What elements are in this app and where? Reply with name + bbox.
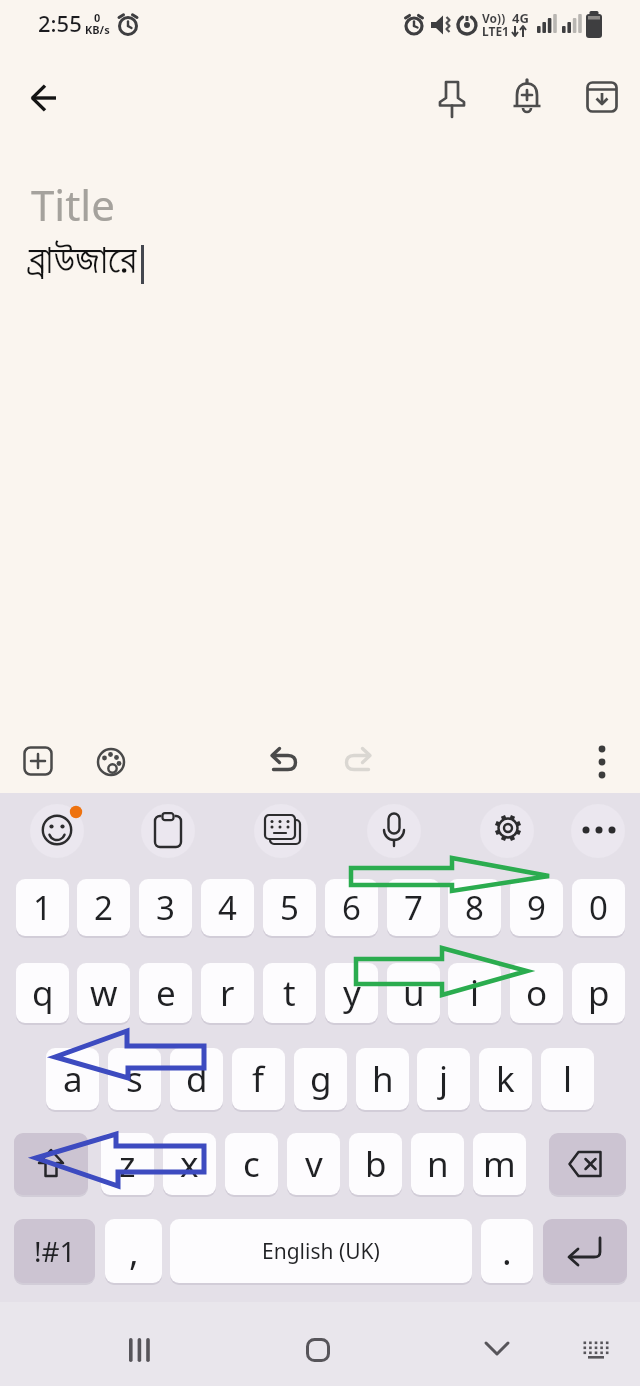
button[interactable]: u (387, 963, 440, 1023)
button[interactable]: 2 (77, 879, 130, 936)
staticText: n (427, 1140, 449, 1188)
staticText: . (502, 1227, 512, 1276)
button[interactable]: i (448, 963, 501, 1023)
staticText: y (343, 969, 361, 1017)
button[interactable] (543, 1219, 627, 1283)
staticText: a (63, 1055, 83, 1103)
button[interactable] (26, 82, 60, 114)
button[interactable] (153, 812, 183, 849)
button[interactable]: s (108, 1048, 161, 1110)
button[interactable]: j (417, 1048, 470, 1110)
staticText: u (403, 969, 425, 1017)
button[interactable]: h (356, 1048, 409, 1110)
staticText: f (252, 1055, 265, 1103)
staticText: 8 (465, 885, 484, 930)
button[interactable] (480, 804, 534, 858)
button[interactable] (590, 742, 614, 782)
staticText: ব্রাউজারে (29, 240, 137, 281)
button[interactable]: a (46, 1048, 99, 1110)
button[interactable] (510, 78, 544, 118)
button[interactable] (367, 804, 421, 858)
button[interactable]: . (481, 1219, 533, 1283)
button[interactable]: l (541, 1048, 594, 1110)
button[interactable]: 9 (510, 879, 563, 936)
button[interactable] (96, 747, 126, 777)
button[interactable]: 5 (263, 879, 316, 936)
button[interactable]: d (170, 1048, 223, 1110)
button[interactable] (23, 746, 53, 776)
staticText: 5 (280, 885, 299, 930)
button[interactable] (436, 80, 468, 120)
button[interactable] (586, 81, 618, 113)
staticText: g (310, 1055, 332, 1103)
button[interactable]: English (UK) (170, 1219, 472, 1283)
staticText: b (365, 1140, 387, 1188)
button[interactable]: p (572, 963, 625, 1023)
button[interactable]: k (479, 1048, 532, 1110)
button[interactable]: w (77, 963, 130, 1023)
staticText: c (243, 1140, 260, 1188)
staticText: 2:55 (38, 8, 82, 38)
staticText: KB/s (85, 22, 110, 37)
button[interactable]: z (101, 1133, 154, 1195)
button[interactable]: e (139, 963, 192, 1023)
button[interactable]: 8 (448, 879, 501, 936)
button[interactable] (254, 804, 308, 858)
staticText: k (496, 1055, 515, 1103)
button[interactable]: y (325, 963, 378, 1023)
button[interactable]: b (349, 1133, 402, 1195)
button[interactable] (380, 812, 408, 850)
button[interactable] (549, 1133, 626, 1195)
staticText: r (220, 969, 235, 1017)
button[interactable]: 6 (325, 879, 378, 936)
button[interactable]: c (225, 1133, 278, 1195)
staticText: v (305, 1140, 323, 1188)
button[interactable]: g (294, 1048, 347, 1110)
button[interactable]: t (263, 963, 316, 1023)
button[interactable]: r (201, 963, 254, 1023)
button[interactable] (141, 804, 195, 858)
staticText: j (439, 1055, 449, 1103)
staticText: p (588, 969, 610, 1017)
staticText: i (470, 969, 480, 1017)
button[interactable]: f (232, 1048, 285, 1110)
button[interactable] (30, 804, 84, 858)
staticText: 0 (94, 10, 101, 25)
button[interactable] (14, 1133, 88, 1195)
button[interactable]: !#1 (14, 1219, 95, 1283)
staticText: d (186, 1055, 208, 1103)
button[interactable]: o (510, 963, 563, 1023)
button[interactable] (263, 813, 301, 847)
button[interactable] (268, 744, 300, 776)
button[interactable]: 1 (16, 879, 69, 936)
button[interactable] (582, 1340, 610, 1360)
staticText: English (UK) (262, 1237, 380, 1266)
button[interactable]: 7 (387, 879, 440, 936)
button[interactable]: 0 (572, 879, 625, 936)
staticText: , (129, 1227, 139, 1276)
staticText: l (563, 1055, 573, 1103)
button[interactable] (580, 822, 620, 838)
staticText: z (119, 1140, 136, 1188)
button[interactable]: v (287, 1133, 340, 1195)
button[interactable] (342, 744, 374, 776)
button[interactable]: q (16, 963, 69, 1023)
button[interactable]: 3 (139, 879, 192, 936)
button[interactable]: m (473, 1133, 526, 1195)
staticText: !#1 (34, 1232, 76, 1270)
button[interactable] (128, 1337, 154, 1363)
button[interactable]: x (163, 1133, 216, 1195)
staticText: 0 (589, 885, 608, 930)
button[interactable]: , (105, 1219, 162, 1283)
button[interactable] (492, 812, 524, 844)
staticText: q (32, 969, 54, 1017)
staticText: 9 (527, 885, 546, 930)
staticText: Title (31, 176, 115, 233)
button[interactable] (41, 814, 73, 846)
button[interactable] (306, 1338, 330, 1362)
button[interactable] (571, 804, 625, 858)
button[interactable]: n (411, 1133, 464, 1195)
button[interactable]: 4 (201, 879, 254, 936)
button[interactable] (484, 1340, 510, 1358)
staticText: s (126, 1055, 143, 1103)
